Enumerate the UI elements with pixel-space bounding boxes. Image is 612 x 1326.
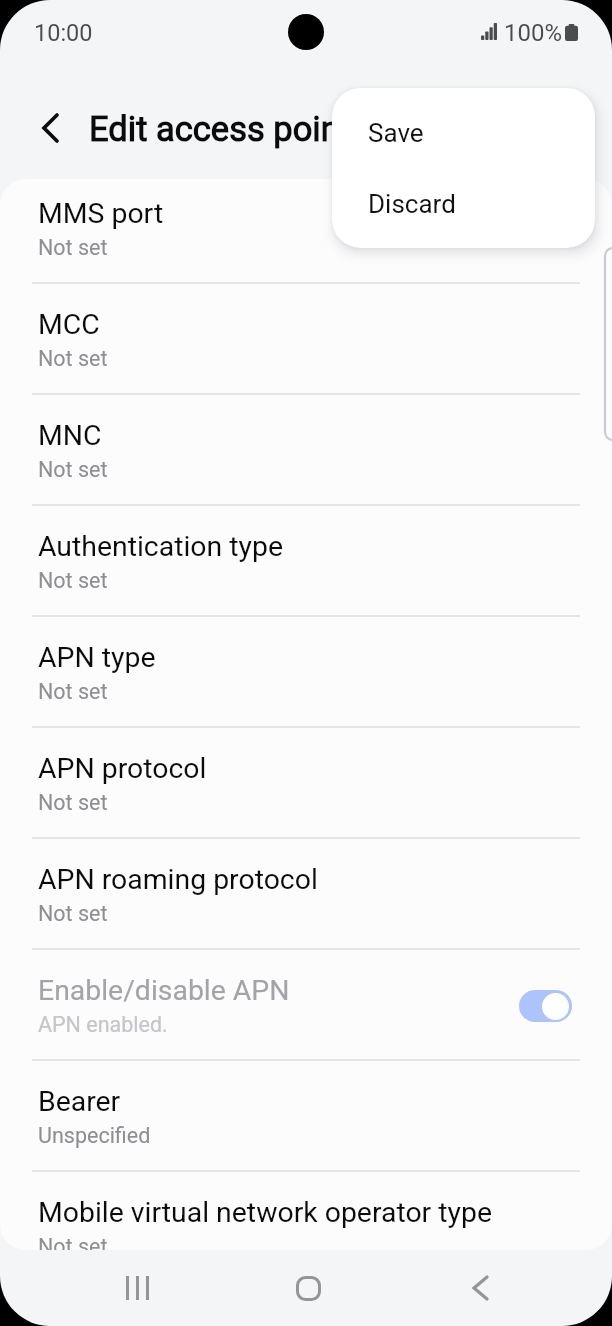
staticText: Authentication type (38, 530, 283, 563)
staticText: Discard (368, 189, 456, 219)
staticText: Edit access point (89, 109, 352, 149)
staticText: Unspecified (38, 1123, 151, 1148)
staticText: Not set (38, 790, 108, 815)
button[interactable]: Back (451, 1259, 509, 1317)
staticText: APN enabled. (38, 1012, 168, 1037)
staticText: MCC (38, 308, 100, 341)
button[interactable]: APN protocol (0, 728, 612, 839)
button[interactable]: MMS port (0, 179, 612, 284)
button[interactable]: Bearer (0, 1061, 612, 1172)
staticText: Enable/disable APN (38, 974, 290, 1007)
staticText: MNC (38, 419, 102, 452)
staticText: Mobile virtual network operator type (38, 1196, 493, 1229)
staticText: APN roaming protocol (38, 863, 318, 896)
staticText: Not set (38, 679, 108, 704)
button[interactable]: Home (279, 1259, 337, 1317)
staticText: APN protocol (38, 752, 207, 785)
staticText: 100% (504, 19, 563, 47)
button[interactable]: Discard (332, 168, 595, 239)
staticText: Not set (38, 901, 108, 926)
staticText: Save (368, 118, 424, 148)
button[interactable]: Recents (108, 1259, 166, 1317)
staticText: Not set (38, 568, 108, 593)
button[interactable]: Enable APN (519, 990, 572, 1022)
staticText: Not set (38, 346, 108, 371)
staticText: Not set (38, 235, 108, 260)
staticText: Not set (38, 457, 108, 482)
button[interactable]: MNC (0, 395, 612, 506)
button[interactable]: Mobile virtual network operator type (0, 1172, 612, 1250)
staticText: Not set (38, 1234, 108, 1250)
staticText: 10:00 (34, 19, 93, 47)
button[interactable]: APN roaming protocol (0, 839, 612, 950)
button[interactable]: MCC (0, 284, 612, 395)
staticText: Bearer (38, 1085, 121, 1118)
button[interactable]: APN type (0, 617, 612, 728)
button[interactable]: Save (332, 97, 595, 168)
button[interactable]: Authentication type (0, 506, 612, 617)
button[interactable]: Enable/disable APN (0, 950, 612, 1061)
button[interactable]: Navigate up (21, 99, 79, 157)
staticText: APN type (38, 641, 156, 674)
staticText: MMS port (38, 197, 164, 230)
